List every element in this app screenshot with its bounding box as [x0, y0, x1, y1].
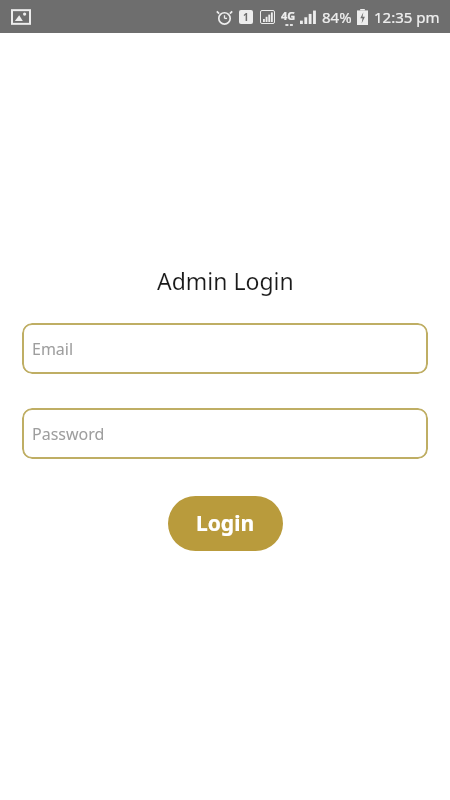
- button[interactable]: Login: [168, 496, 283, 551]
- button[interactable]: Password: [22, 408, 428, 459]
- staticText: 1: [243, 10, 249, 24]
- staticText: Password: [32, 423, 105, 445]
- staticText: 4G: [281, 8, 296, 23]
- other: Gallery notification: [12, 8, 30, 26]
- staticText: Admin Login: [157, 265, 294, 296]
- staticText: 12:35 pm: [374, 7, 440, 27]
- button[interactable]: Email: [22, 323, 428, 374]
- staticText: Login: [196, 509, 255, 538]
- staticText: 84%: [322, 7, 352, 27]
- staticText: Email: [32, 338, 74, 360]
